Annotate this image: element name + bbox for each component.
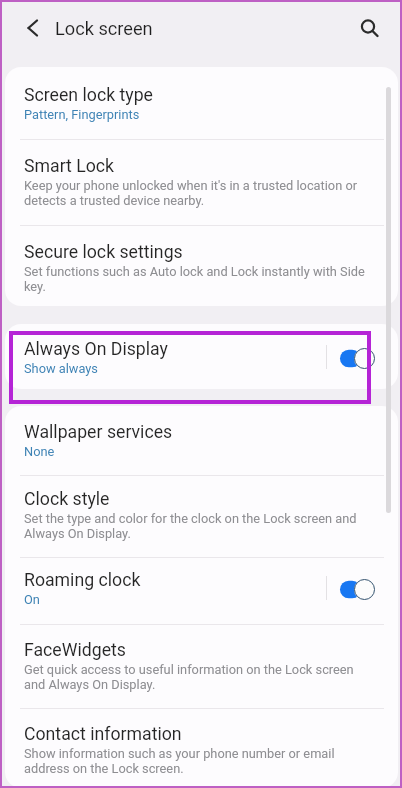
button[interactable]: Clock style — [5, 476, 398, 558]
staticText: On — [24, 592, 40, 607]
staticText: Lock screen — [55, 16, 153, 40]
button[interactable]: Secure lock settings — [5, 226, 398, 306]
staticText: Show information such as your phone numb… — [24, 746, 369, 776]
staticText: Always On Display — [24, 340, 168, 359]
button[interactable]: Roaming clock — [5, 558, 398, 625]
button[interactable]: Contact information — [5, 709, 398, 786]
staticText: Secure lock settings — [24, 243, 183, 262]
staticText: Set functions such as Auto lock and Lock… — [24, 264, 369, 294]
staticText: Wallpaper services — [24, 423, 173, 442]
button[interactable]: FaceWidgets — [5, 625, 398, 709]
button[interactable]: Always On Display — [5, 324, 398, 389]
staticText: Set the type and color for the clock on … — [24, 511, 369, 541]
staticText: Pattern, Fingerprints — [24, 107, 140, 122]
staticText: Roaming clock — [24, 571, 141, 590]
button[interactable]: Screen lock type — [5, 67, 398, 140]
button[interactable]: Search — [350, 9, 390, 49]
staticText: Smart Lock — [24, 157, 115, 176]
staticText: Contact information — [24, 725, 182, 744]
staticText: Show always — [24, 361, 98, 376]
button[interactable]: Back — [13, 8, 53, 48]
staticText: FaceWidgets — [24, 641, 126, 660]
button[interactable]: Smart Lock — [5, 140, 398, 226]
staticText: Clock style — [24, 490, 110, 509]
staticText: Screen lock type — [24, 86, 153, 105]
staticText: None — [24, 444, 55, 459]
staticText: Get quick access to useful information o… — [24, 662, 369, 692]
button[interactable]: Wallpaper services — [5, 406, 398, 476]
staticText: Keep your phone unlocked when it's in a … — [24, 178, 369, 208]
